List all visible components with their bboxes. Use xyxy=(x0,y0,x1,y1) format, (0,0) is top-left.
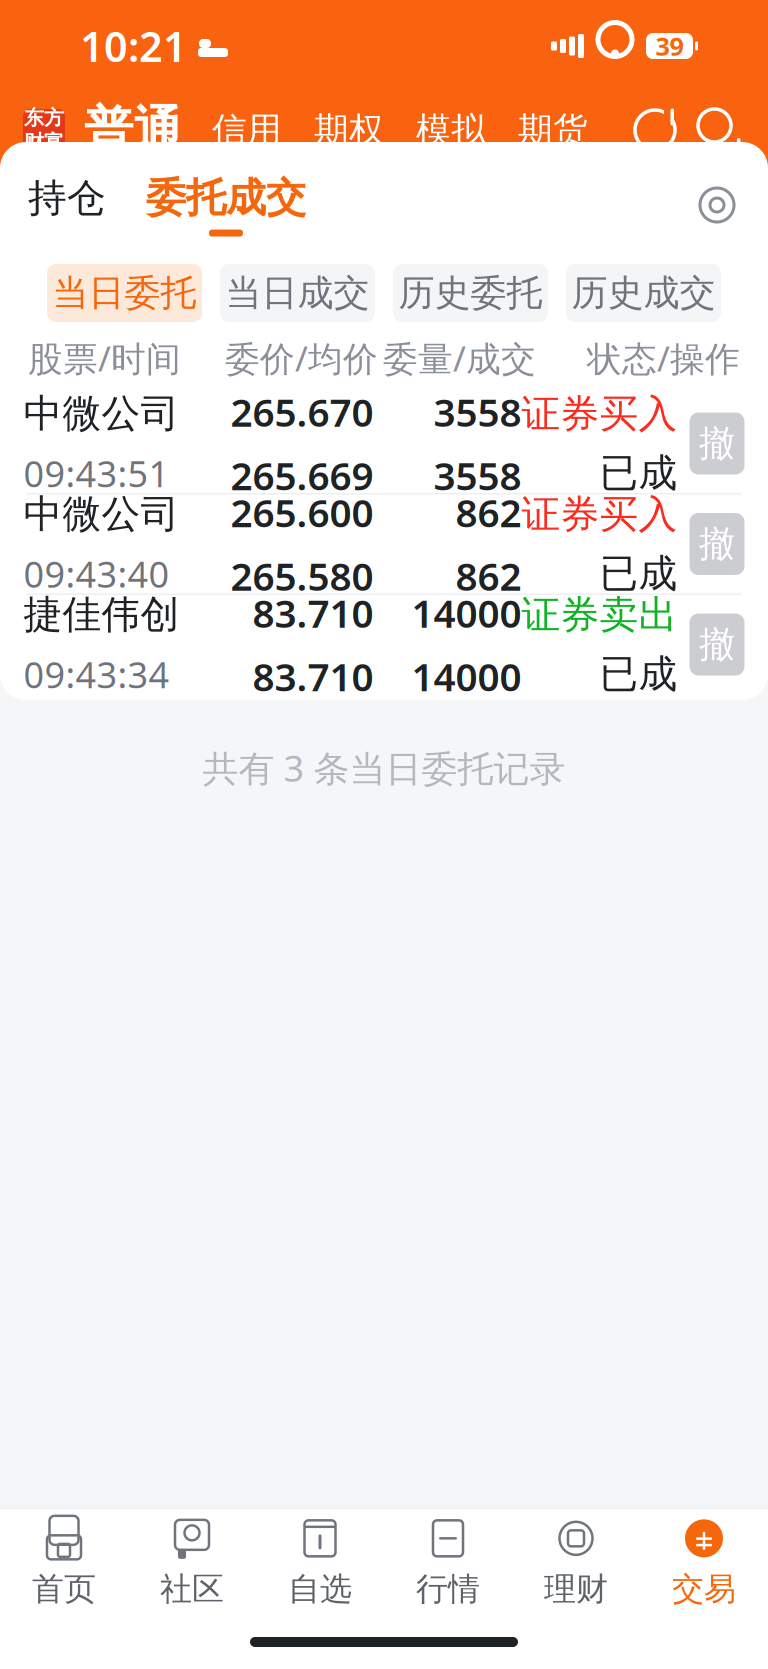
staticText: 83.710 xyxy=(252,650,373,702)
staticText: 普通 xyxy=(84,100,182,160)
staticText: 自选 xyxy=(288,1569,352,1609)
button[interactable]: 期权 xyxy=(308,109,390,151)
staticText: 已成 xyxy=(599,650,677,698)
staticText: 中微公司 xyxy=(23,390,179,437)
staticText: 14000 xyxy=(411,587,521,638)
staticText: 撤 xyxy=(699,522,735,566)
button[interactable]: 中微公司 xyxy=(0,394,768,493)
staticText: 状态/操作 xyxy=(587,335,740,381)
button[interactable]: 搜索 xyxy=(694,105,744,155)
staticText: 撤 xyxy=(699,421,735,466)
staticText: 09:43:51 xyxy=(23,449,169,497)
staticText: 862 xyxy=(455,550,521,601)
button[interactable]: 普通 xyxy=(78,100,188,160)
staticText: 期权 xyxy=(314,109,384,151)
button[interactable]: 持仓 xyxy=(18,174,116,236)
staticText: 历史成交 xyxy=(571,271,715,315)
staticText: 共有 3 条当日委托记录 xyxy=(202,744,565,792)
button[interactable]: 社区 xyxy=(128,1509,256,1615)
staticText: 委托成交 xyxy=(146,173,306,222)
button[interactable]: 历史委托 xyxy=(393,264,548,322)
button[interactable]: 模拟 xyxy=(410,109,492,151)
staticText: 委量/成交 xyxy=(383,335,536,381)
staticText: 83.710 xyxy=(252,587,373,638)
staticText: 行情 xyxy=(416,1569,480,1609)
staticText: 已成 xyxy=(599,550,677,597)
staticText: 东方 xyxy=(24,105,64,130)
staticText: 862 xyxy=(455,487,521,538)
staticText: 模拟 xyxy=(416,109,486,151)
staticText: 撤 xyxy=(699,622,735,667)
button[interactable]: 首页 xyxy=(0,1509,128,1615)
staticText: 持仓 xyxy=(28,174,106,222)
staticText: 已成 xyxy=(599,449,677,497)
button[interactable]: 当日委托 xyxy=(47,264,202,322)
staticText: 10:21 xyxy=(80,19,187,73)
staticText: 交易 xyxy=(672,1569,736,1609)
button[interactable]: 东方财富 xyxy=(20,106,68,154)
button[interactable]: 当日成交 xyxy=(220,264,375,322)
staticText: 首页 xyxy=(32,1569,96,1609)
staticText: 证券买入 xyxy=(521,490,677,538)
button[interactable]: 中微公司 xyxy=(0,494,768,593)
staticText: 期货 xyxy=(518,109,588,151)
staticText: 265.670 xyxy=(230,386,373,437)
staticText: 证券卖出 xyxy=(521,591,677,638)
button[interactable]: 行情 xyxy=(384,1509,512,1615)
staticText: 09:43:34 xyxy=(23,650,169,698)
staticText: 3558 xyxy=(433,386,521,437)
staticText: 证券买入 xyxy=(521,390,677,437)
staticText: 委价/均价 xyxy=(225,335,378,381)
button[interactable]: 委托成交 xyxy=(136,173,316,236)
button[interactable]: 理财 xyxy=(512,1509,640,1615)
staticText: 3558 xyxy=(433,449,521,501)
staticText: 社区 xyxy=(160,1569,224,1609)
button[interactable]: 捷佳伟创 xyxy=(0,595,768,694)
staticText: 理财 xyxy=(544,1569,608,1609)
button[interactable]: 自选 xyxy=(256,1509,384,1615)
staticText: 265.600 xyxy=(230,487,373,538)
staticText: 捷佳伟创 xyxy=(23,591,179,638)
button[interactable]: 信用 xyxy=(206,109,288,151)
staticText: 信用 xyxy=(212,109,282,151)
staticText: 当日委托 xyxy=(52,271,196,315)
staticText: 财富 xyxy=(24,130,64,155)
button[interactable]: 历史成交 xyxy=(566,264,721,322)
button[interactable]: 交易 xyxy=(640,1509,768,1615)
staticText: 265.669 xyxy=(230,449,373,501)
staticText: 当日成交 xyxy=(225,271,369,315)
button[interactable]: 期货 xyxy=(512,109,594,151)
button[interactable]: 刷新 xyxy=(630,105,680,155)
staticText: 09:43:40 xyxy=(23,550,169,598)
staticText: 股票/时间 xyxy=(28,335,181,381)
staticText: 39 xyxy=(655,29,683,63)
staticText: 历史委托 xyxy=(398,271,542,315)
staticText: 14000 xyxy=(411,650,521,702)
staticText: 265.580 xyxy=(230,550,373,601)
staticText: 中微公司 xyxy=(23,490,179,538)
button[interactable]: 设置 xyxy=(694,182,740,228)
